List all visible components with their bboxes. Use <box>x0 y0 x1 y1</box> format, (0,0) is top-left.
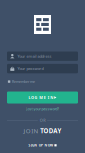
button[interactable]: Lost your password? <box>7 106 78 112</box>
button[interactable]: SIGN UP NOW <box>28 142 57 148</box>
staticText: TODAY <box>40 127 62 135</box>
button[interactable]: Remember me <box>7 79 78 85</box>
staticText: Remember me <box>12 79 35 84</box>
staticText: LOG ME IN <box>28 95 53 100</box>
button[interactable]: Your password <box>7 64 78 73</box>
staticText: Lost your password? <box>25 107 59 111</box>
button[interactable]: Your email address <box>7 51 78 61</box>
staticText: JOIN <box>23 127 38 135</box>
staticText: Your password <box>18 66 44 71</box>
staticText: SIGN UP NOW <box>28 143 53 147</box>
staticText: Your email address <box>18 54 52 59</box>
button[interactable]: LOG ME IN <box>7 91 78 103</box>
staticText: OR <box>40 118 45 123</box>
